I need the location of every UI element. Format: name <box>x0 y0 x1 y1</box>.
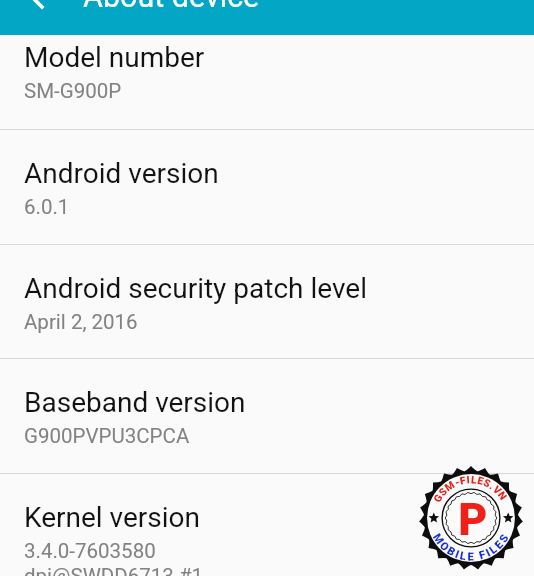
button[interactable]: Android security patch level <box>0 245 534 358</box>
staticText: Android version <box>24 157 219 190</box>
staticText: 6.0.1 <box>24 195 70 219</box>
button[interactable]: Navigate up <box>10 0 66 35</box>
staticText: April 2, 2016 <box>24 310 138 334</box>
staticText: 3.4.0-7603580 <box>24 539 156 563</box>
button[interactable]: Kernel version <box>0 474 534 576</box>
staticText: G900PVPU3CPCA <box>24 424 190 448</box>
staticText: dpi@SWDD6713 #1 <box>24 564 204 576</box>
staticText: Android security patch level <box>24 272 367 305</box>
staticText: Model number <box>24 41 205 74</box>
staticText: About device <box>83 0 260 14</box>
button[interactable]: Baseband version <box>0 359 534 473</box>
staticText: Kernel version <box>24 501 201 534</box>
button[interactable]: Android version <box>0 130 534 244</box>
button[interactable]: Model number <box>0 35 534 129</box>
staticText: SM-G900P <box>24 79 122 103</box>
staticText: Baseband version <box>24 386 246 419</box>
